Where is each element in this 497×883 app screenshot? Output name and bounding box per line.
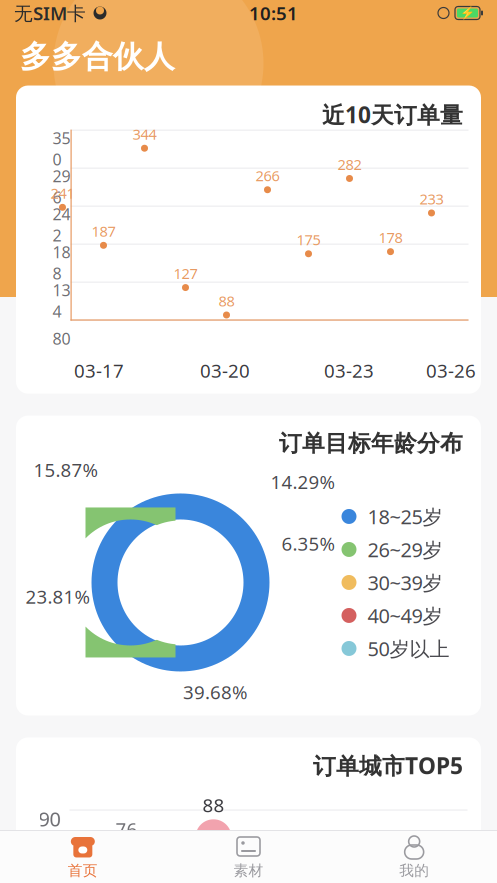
staticText: 订单城市TOP5 [313,750,463,780]
staticText: 无SIM卡 [14,1,86,25]
staticText: 90 [38,805,60,832]
staticText: 344 [132,124,156,144]
staticText: 282 [337,154,361,174]
staticText: 近10天订单量 [322,99,463,130]
staticText: 40~49岁 [367,602,442,629]
staticText: 242 [52,203,70,246]
staticText: 订单目标年龄分布 [279,430,463,457]
staticText: 18~25岁 [367,503,442,530]
staticText: ⚡ [460,6,475,20]
staticText: 15.87% [33,457,98,482]
staticText: 127 [173,264,197,283]
staticText: 10:51 [249,1,298,25]
staticText: 03-26 [426,358,476,383]
staticText: 03-17 [74,358,124,383]
staticText: 134 [52,279,70,322]
staticText: 233 [419,189,443,208]
staticText: 178 [378,228,402,247]
staticText: 187 [91,221,115,241]
staticText: 首页 [68,861,98,879]
staticText: 50岁以上 [367,635,449,662]
staticText: 6.35% [281,531,335,556]
staticText: 188 [52,241,70,284]
staticText: 03-23 [324,358,374,383]
button[interactable]: 我的 [331,832,497,881]
staticText: 350 [52,127,70,170]
staticText: 175 [296,230,320,249]
staticText: 我的 [399,861,429,879]
staticText: 03-20 [200,358,250,383]
staticText: 80 [52,328,70,349]
staticText: 39.68% [183,680,248,704]
button[interactable]: 素材 [166,832,331,881]
staticText: 素材 [233,861,263,879]
staticText: 88 [202,792,224,817]
staticText: 266 [255,166,279,185]
staticText: 26~29岁 [367,536,442,563]
staticText: 23.81% [25,584,90,609]
staticText: 296 [52,165,70,208]
staticText: 241 [50,183,74,203]
staticText: 76 [115,816,137,841]
staticText: 多多合伙人 [20,38,175,76]
staticText: 14.29% [270,469,335,494]
staticText: 30~39岁 [367,569,442,596]
button[interactable]: 首页 [0,832,166,881]
staticText: 88 [218,291,234,310]
